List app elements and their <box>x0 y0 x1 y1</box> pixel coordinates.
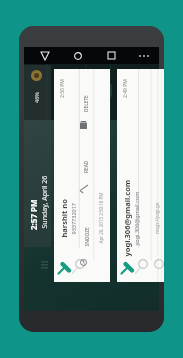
button[interactable]: yogi.306@gmail.com <box>117 69 164 282</box>
staticText: 2:50 PM <box>59 79 66 98</box>
staticText: 9337732017 <box>69 202 76 234</box>
staticText: 2:49 PM <box>122 79 129 98</box>
staticText: Note T <box>70 228 85 262</box>
staticText: Note <box>43 223 50 235</box>
staticText: READ <box>83 160 90 173</box>
button[interactable]: More options <box>136 48 151 63</box>
staticText: yogi.306@gmail.com <box>121 179 131 256</box>
staticText: Sunday, April 26 <box>39 175 49 228</box>
staticText: DELETE <box>83 95 90 112</box>
button[interactable]: DELETE <box>80 87 92 123</box>
staticText: Note C <box>98 229 113 264</box>
button[interactable]: SNOOZE <box>80 217 92 261</box>
button[interactable]: Recent apps <box>103 47 120 64</box>
staticText: yogi.306@gmail.com <box>132 191 139 245</box>
staticText: Pendant <box>128 231 139 262</box>
button[interactable]: Back <box>36 47 53 64</box>
staticText: harshit no <box>58 198 68 237</box>
button[interactable]: harshit no <box>54 69 110 282</box>
staticText: msgs://yogi.go <box>154 202 160 234</box>
staticText: Cash <box>50 223 57 235</box>
staticText: ... <box>35 72 41 82</box>
button[interactable]: Home <box>69 47 86 64</box>
staticText: 46% <box>33 92 40 103</box>
button[interactable]: READ <box>80 149 92 187</box>
staticText: SNOOZE <box>83 226 90 246</box>
staticText: Apr 26, 2015 2:50:18 PM <box>97 192 103 243</box>
button[interactable]: User profile <box>31 70 42 81</box>
staticText: 2:57 PM <box>28 199 39 230</box>
